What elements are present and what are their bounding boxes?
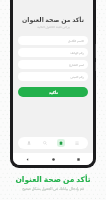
button[interactable]: Home — [50, 156, 57, 163]
staticText: اسم الشارع — [69, 63, 84, 67]
button[interactable]: رقم المبنى — [18, 72, 88, 81]
button[interactable]: الاسم الكامل — [18, 36, 88, 45]
staticText: تأكد من صحة العنوان — [15, 174, 91, 184]
button[interactable]: تأكيد — [18, 87, 88, 97]
button[interactable]: Search — [40, 138, 50, 148]
staticText: تأكيد — [49, 90, 58, 94]
staticText: رقم المبنى — [70, 75, 84, 79]
staticText: رقم الهاتف — [70, 51, 84, 55]
staticText: تأكد من صحة العنوان — [22, 15, 84, 23]
staticText: الاسم الكامل — [67, 39, 84, 43]
staticText: يرجى تعبئة الحقول التالية — [37, 25, 70, 29]
button[interactable]: رقم الهاتف — [18, 48, 88, 57]
button[interactable]: Profile — [24, 138, 34, 148]
button[interactable]: اسم الشارع — [18, 60, 88, 69]
button[interactable]: Back — [24, 156, 31, 163]
button[interactable]: Home — [56, 138, 66, 148]
button[interactable]: Menu — [72, 138, 82, 148]
button[interactable]: Recents — [75, 156, 82, 163]
staticText: قم بإدخال بياناتك في الحقول بشكل صحيح — [22, 186, 84, 191]
